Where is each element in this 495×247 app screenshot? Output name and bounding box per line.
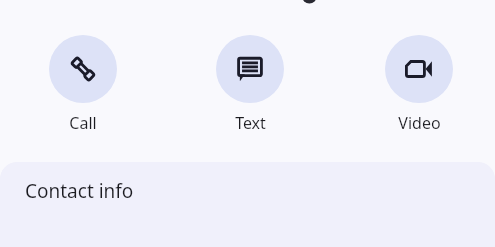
staticText: Text (235, 112, 266, 134)
staticText: Call (69, 112, 97, 134)
button[interactable]: Contact info (0, 162, 495, 220)
button[interactable]: Video (379, 35, 459, 125)
staticText: Video (398, 112, 441, 134)
staticText: Contact info (25, 178, 134, 204)
button[interactable]: Text (210, 35, 290, 125)
button[interactable]: Call (43, 35, 123, 125)
